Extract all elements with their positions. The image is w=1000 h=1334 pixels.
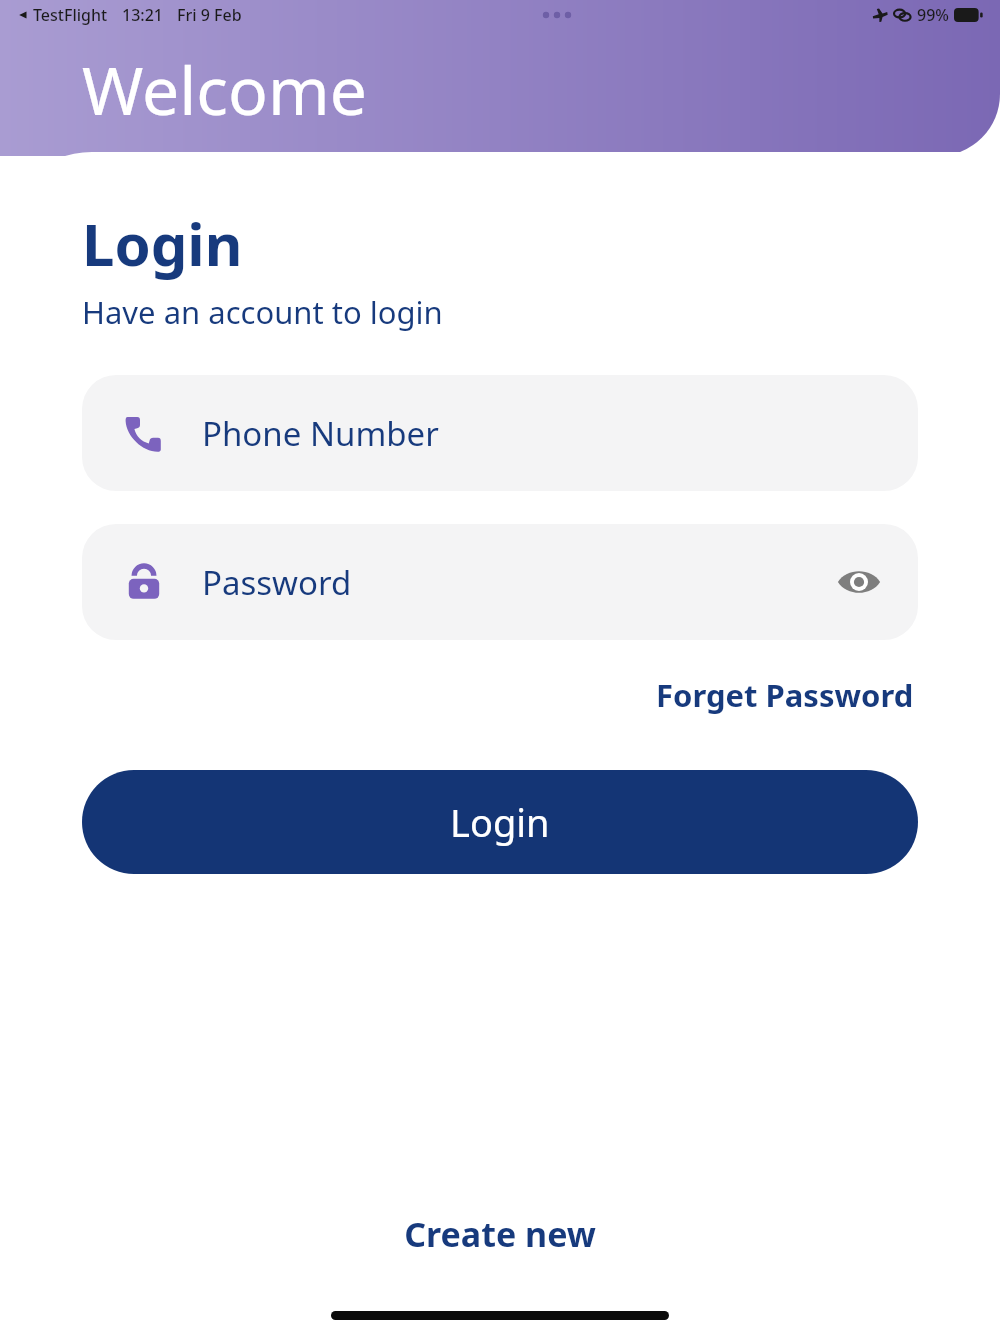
button[interactable]: Login (82, 770, 918, 874)
button[interactable]: Password (82, 524, 918, 640)
button[interactable]: Phone Number (82, 375, 918, 491)
staticText: Login (82, 204, 243, 283)
button[interactable]: Show password (836, 559, 882, 605)
staticText: Have an account to login (82, 291, 443, 333)
staticText: 99% (917, 4, 949, 26)
button[interactable]: Forget Password (652, 670, 918, 720)
staticText: TestFlight (33, 4, 108, 26)
staticText: Welcome (82, 44, 367, 134)
staticText: 13:21 (122, 4, 163, 26)
staticText: Password (202, 560, 352, 605)
staticText: Fri 9 Feb (177, 4, 242, 26)
staticText: Phone Number (202, 411, 439, 456)
staticText: Login (450, 796, 550, 848)
button[interactable]: Create new (394, 1205, 606, 1263)
